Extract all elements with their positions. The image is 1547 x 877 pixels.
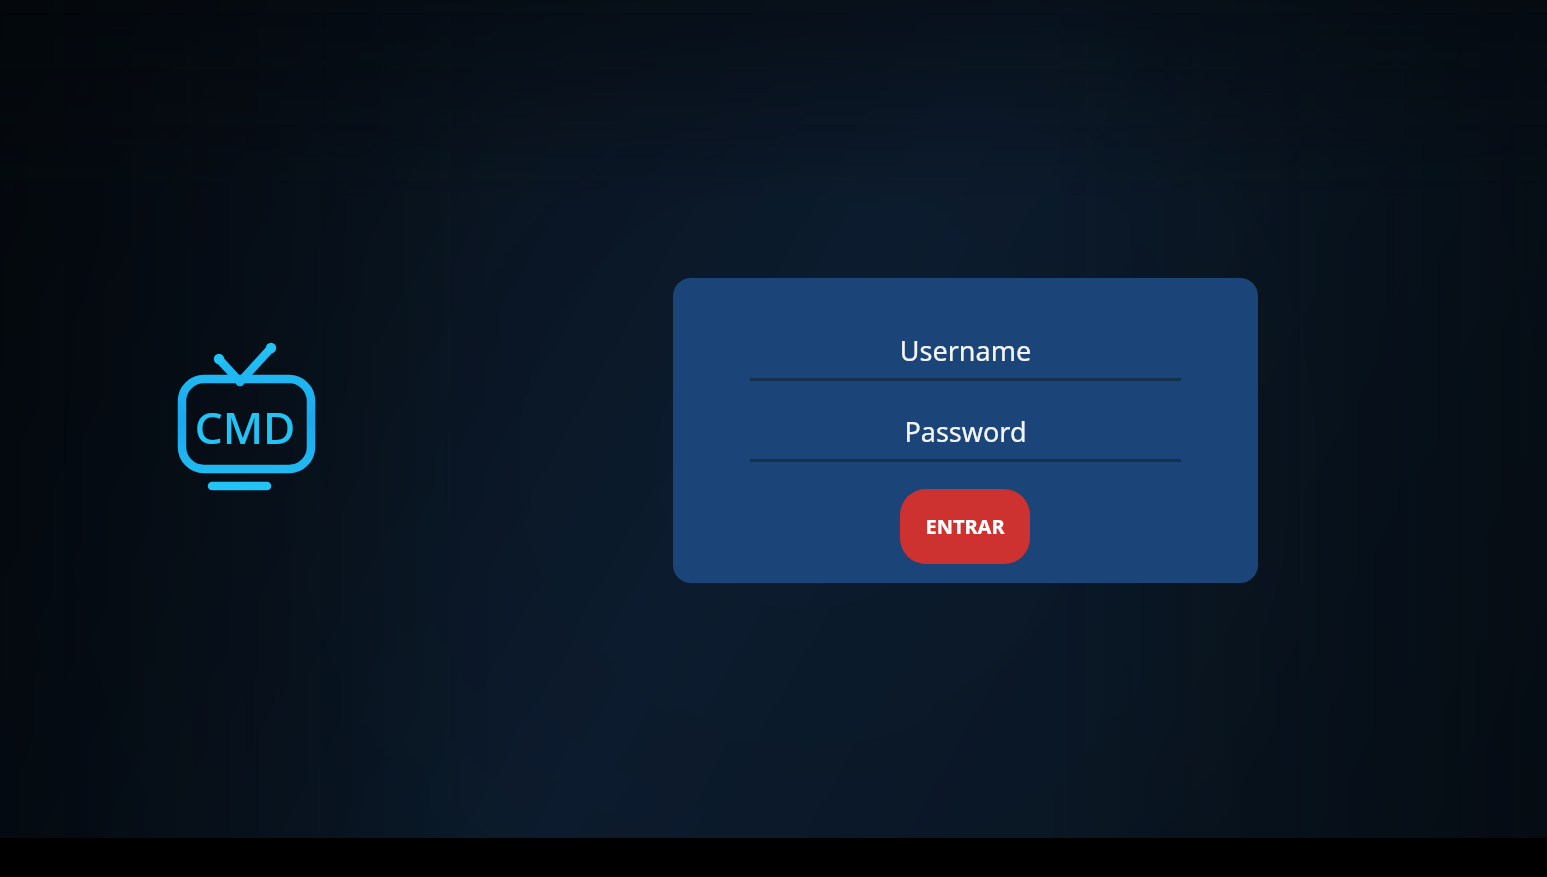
button[interactable]: ENTRAR: [900, 489, 1030, 564]
other: CMD TV logo: [170, 340, 320, 500]
button[interactable]: Username: [750, 332, 1181, 381]
staticText: Password: [750, 413, 1181, 450]
button[interactable]: Password: [750, 413, 1181, 462]
staticText: ENTRAR: [900, 513, 1030, 540]
staticText: Username: [750, 332, 1181, 369]
staticText: CMD: [170, 397, 320, 457]
